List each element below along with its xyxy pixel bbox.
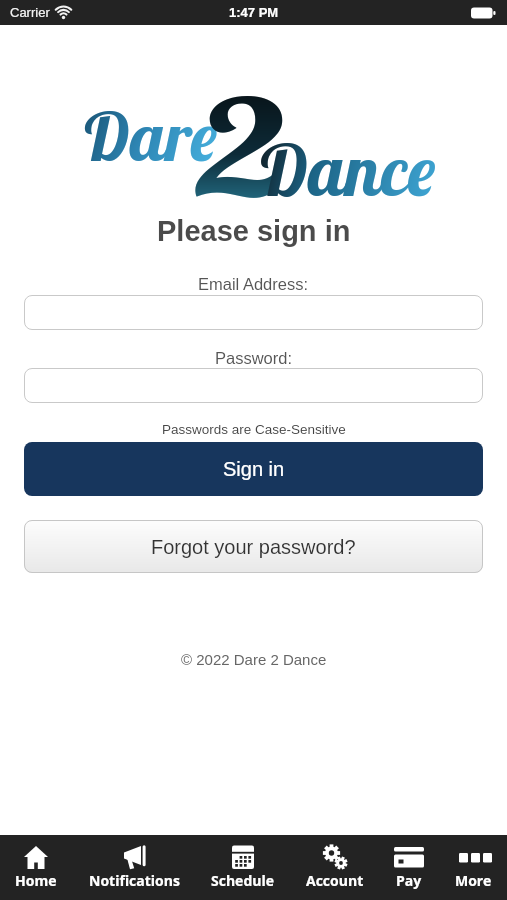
- staticText: © 2022 Dare 2 Dance: [181, 651, 327, 668]
- staticText: Notifications: [89, 871, 180, 890]
- button[interactable]: [24, 295, 483, 330]
- staticText: Pay: [396, 871, 422, 890]
- staticText: Dance: [257, 125, 436, 214]
- button[interactable]: Notifications: [89, 835, 180, 900]
- staticText: Passwords are Case-Sensitive: [162, 422, 346, 437]
- staticText: Forgot your password?: [151, 536, 356, 558]
- button[interactable]: Home: [15, 835, 57, 900]
- staticText: Password:: [215, 349, 293, 367]
- staticText: Please sign in: [157, 215, 351, 247]
- staticText: Dare: [81, 93, 218, 178]
- staticText: 2: [197, 63, 286, 180]
- staticText: Email Address:: [198, 275, 309, 293]
- button[interactable]: Schedule: [211, 835, 274, 900]
- staticText: More: [455, 871, 492, 890]
- staticText: Schedule: [211, 871, 274, 890]
- staticText: Account: [306, 871, 364, 890]
- staticText: 1:47 PM: [229, 5, 279, 20]
- button[interactable]: Forgot your password?: [24, 520, 483, 573]
- staticText: Home: [15, 871, 57, 890]
- button[interactable]: Account: [306, 835, 364, 900]
- staticText: Carrier: [10, 5, 50, 20]
- button[interactable]: More: [455, 835, 492, 900]
- button[interactable]: Pay: [395, 835, 423, 900]
- button[interactable]: [24, 368, 483, 403]
- staticText: Sign in: [223, 458, 285, 480]
- button[interactable]: Sign in: [24, 442, 483, 496]
